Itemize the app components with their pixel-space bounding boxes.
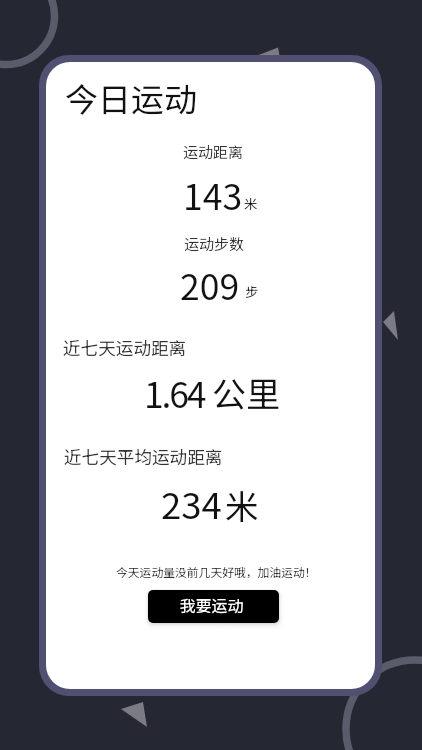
- staticText: 近七天运动距离: [63, 335, 187, 360]
- staticText: 今天运动量没前几天好哦，加油运动！: [116, 563, 317, 580]
- staticText: 米: [225, 480, 259, 529]
- staticText: 143: [183, 169, 243, 220]
- staticText: 步: [245, 281, 259, 301]
- staticText: 近七天平均运动距离: [64, 444, 223, 469]
- staticText: 209: [180, 259, 240, 310]
- staticText: 我要运动: [180, 594, 244, 617]
- staticText: 今日运动: [65, 74, 197, 122]
- button[interactable]: 我要运动: [148, 590, 279, 623]
- staticText: 运动步数: [184, 233, 245, 255]
- staticText: 234: [161, 477, 222, 530]
- staticText: 公里: [212, 368, 280, 417]
- staticText: 米: [244, 193, 258, 213]
- staticText: 1.64: [144, 367, 205, 418]
- staticText: 运动距离: [183, 141, 244, 163]
